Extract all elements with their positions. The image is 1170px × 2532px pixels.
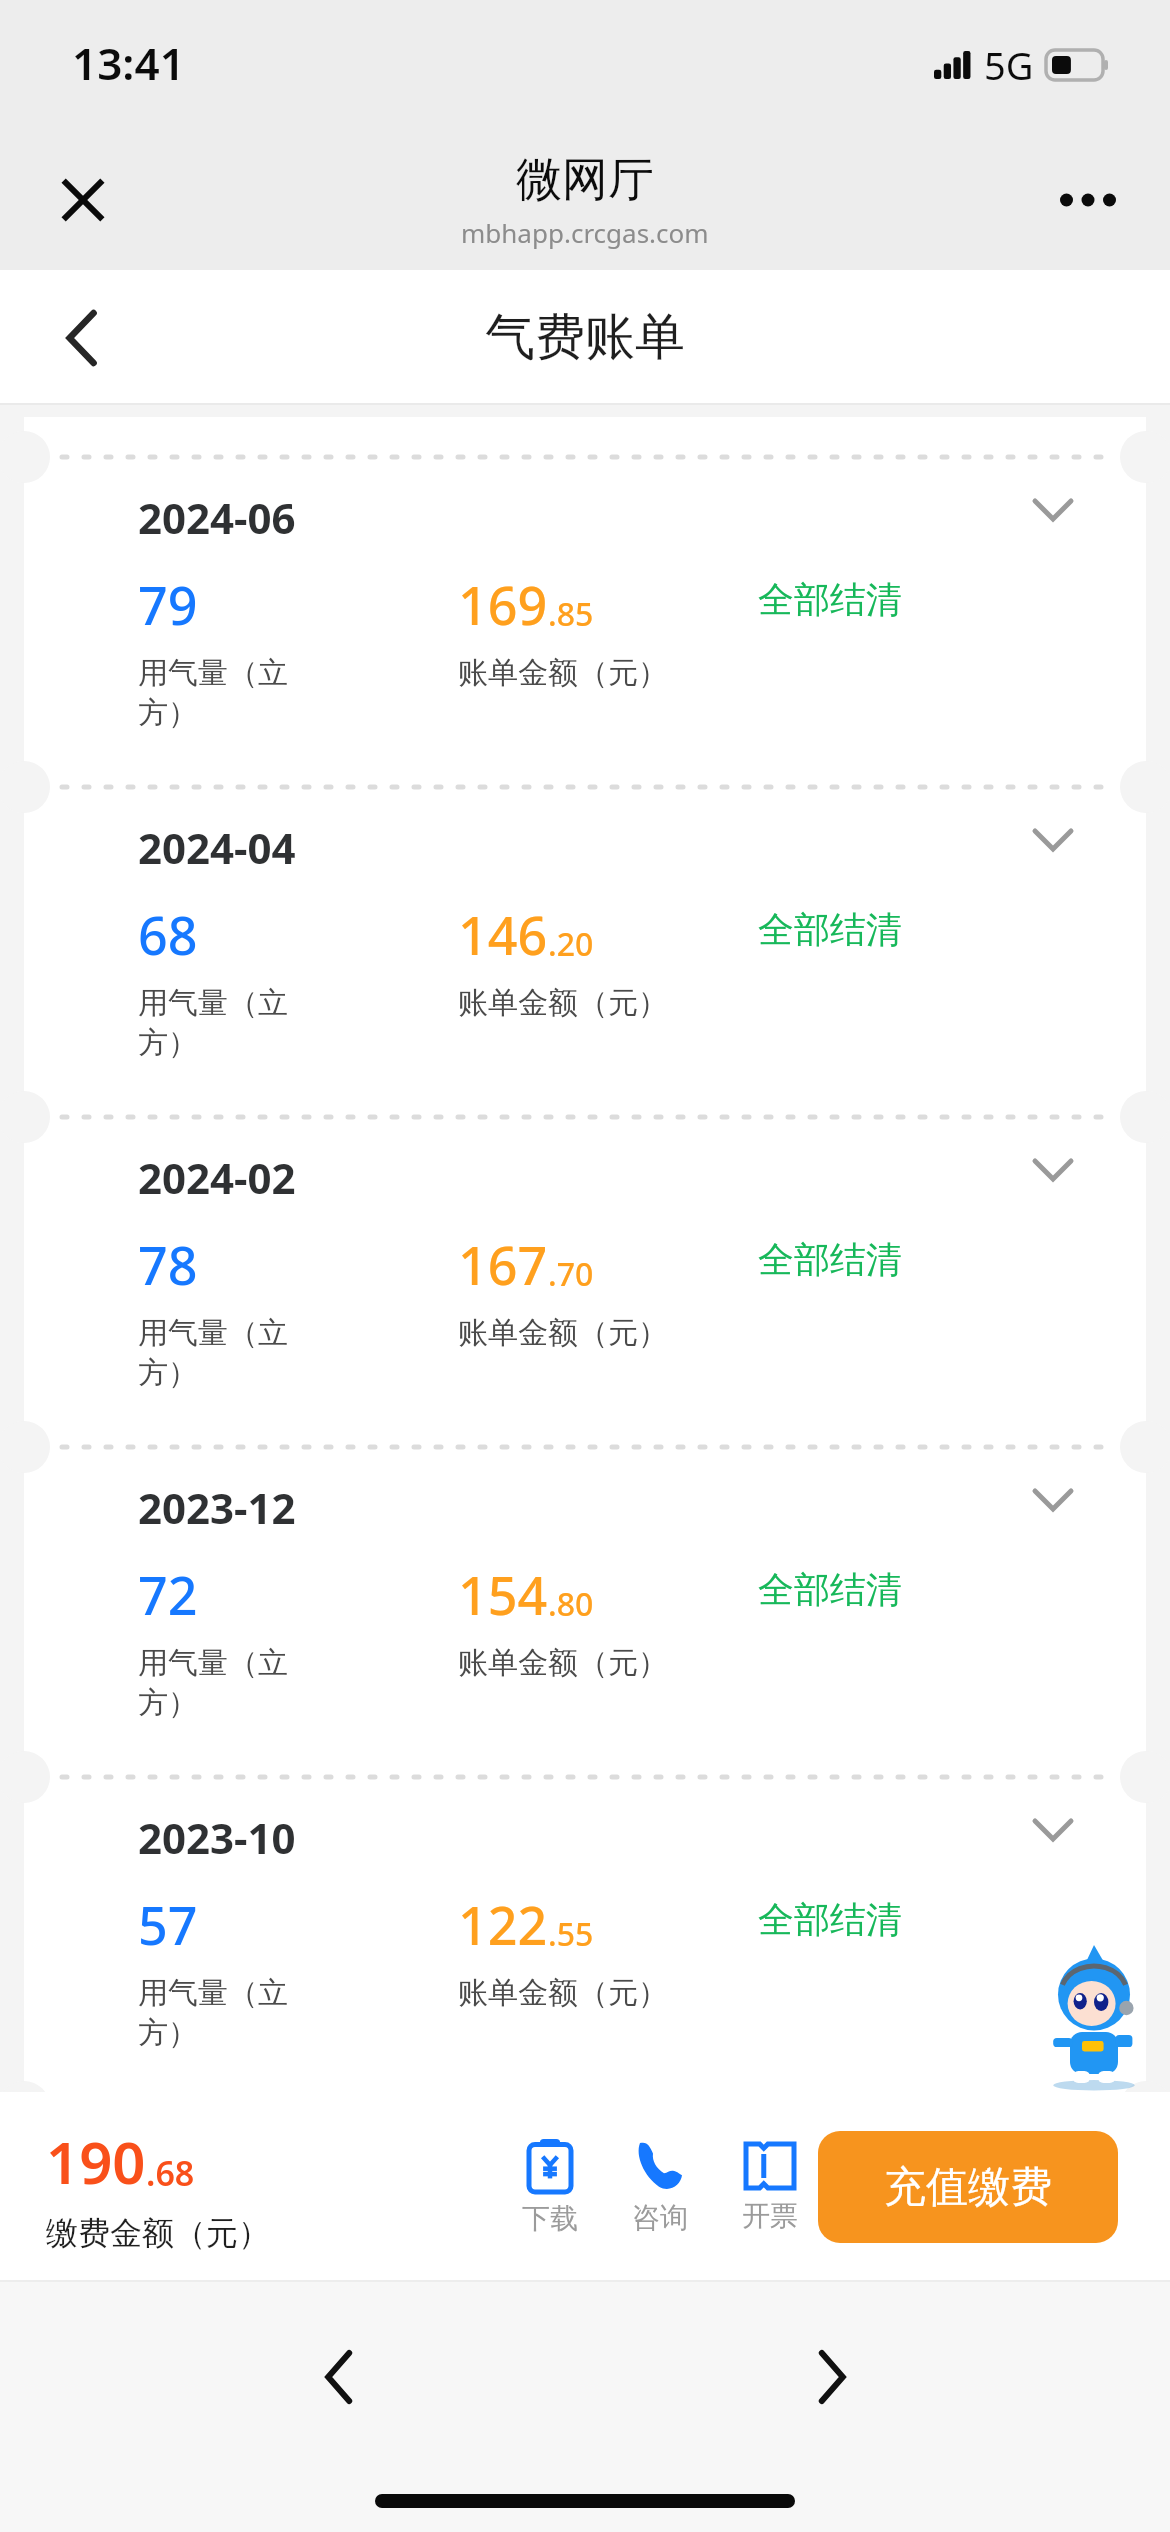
- staticText: 79: [138, 569, 198, 640]
- staticText: 2024-06: [138, 489, 296, 546]
- button[interactable]: 2023-12: [24, 1407, 1146, 1737]
- staticText: 72: [138, 1559, 198, 1630]
- staticText: .55: [548, 1912, 594, 1956]
- staticText: 13:41: [72, 33, 185, 93]
- button[interactable]: 2023-10: [24, 1737, 1146, 2067]
- staticText: .85: [548, 592, 594, 636]
- staticText: 全部结清: [758, 1897, 902, 1942]
- button[interactable]: Forward: [788, 2332, 878, 2422]
- staticText: mbhapp.crcgas.com: [461, 215, 709, 250]
- staticText: 2024-04: [138, 819, 296, 876]
- button[interactable]: 咨询: [616, 2140, 704, 2235]
- button[interactable]: Expand 2024-04: [1020, 807, 1086, 873]
- staticText: .68: [146, 2150, 195, 2196]
- staticText: 全部结清: [758, 1567, 902, 1612]
- staticText: 账单金额（元）: [458, 1314, 668, 1352]
- button[interactable]: 2024-04: [24, 747, 1146, 1077]
- staticText: 2023-12: [138, 1479, 296, 1536]
- staticText: 账单金额（元）: [458, 654, 668, 692]
- staticText: 充值缴费: [884, 2161, 1052, 2214]
- staticText: 账单金额（元）: [458, 984, 668, 1022]
- staticText: 全部结清: [758, 577, 902, 622]
- staticText: 用气量（立方）: [138, 984, 338, 1062]
- button[interactable]: More options: [1048, 160, 1128, 240]
- staticText: 全部结清: [758, 907, 902, 952]
- staticText: 57: [138, 1889, 198, 1960]
- button[interactable]: 2024-06: [24, 417, 1146, 747]
- staticText: 用气量（立方）: [138, 1644, 338, 1722]
- staticText: 微网厅: [516, 151, 654, 209]
- staticText: 用气量（立方）: [138, 654, 338, 732]
- staticText: 68: [138, 899, 198, 970]
- button[interactable]: Expand 2024-06: [1020, 477, 1086, 543]
- staticText: .70: [548, 1252, 594, 1296]
- staticText: 167: [458, 1229, 548, 1300]
- staticText: 气费账单: [485, 306, 685, 369]
- button[interactable]: Expand 2023-12: [1020, 1467, 1086, 1533]
- button[interactable]: Expand 2024-02: [1020, 1137, 1086, 1203]
- button[interactable]: Back: [293, 2332, 383, 2422]
- staticText: 2024-02: [138, 1149, 296, 1206]
- button[interactable]: 充值缴费: [818, 2131, 1118, 2243]
- button[interactable]: Back: [38, 295, 124, 381]
- staticText: 169: [458, 569, 548, 640]
- staticText: 咨询: [632, 2200, 688, 2235]
- staticText: .80: [548, 1582, 594, 1626]
- staticText: 用气量（立方）: [138, 1314, 338, 1392]
- staticText: 78: [138, 1229, 198, 1300]
- staticText: 5G: [984, 39, 1034, 91]
- staticText: 缴费金额（元）: [46, 2213, 270, 2253]
- staticText: 154: [458, 1559, 548, 1630]
- staticText: 账单金额（元）: [458, 1644, 668, 1682]
- staticText: .20: [548, 922, 594, 966]
- button[interactable]: 2024-02: [24, 1077, 1146, 1407]
- staticText: 146: [458, 899, 548, 970]
- staticText: 下载: [522, 2201, 578, 2236]
- button[interactable]: 开票: [726, 2142, 814, 2233]
- staticText: 开票: [742, 2198, 798, 2233]
- staticText: 2023-10: [138, 1809, 296, 1866]
- button[interactable]: 下载: [506, 2139, 594, 2236]
- staticText: 全部结清: [758, 1237, 902, 1282]
- staticText: 账单金额（元）: [458, 1974, 668, 2012]
- button[interactable]: Close: [40, 157, 126, 243]
- button[interactable]: Expand 2023-10: [1020, 1797, 1086, 1863]
- staticText: 122: [458, 1889, 548, 1960]
- staticText: 用气量（立方）: [138, 1974, 338, 2052]
- staticText: 190: [46, 2122, 146, 2201]
